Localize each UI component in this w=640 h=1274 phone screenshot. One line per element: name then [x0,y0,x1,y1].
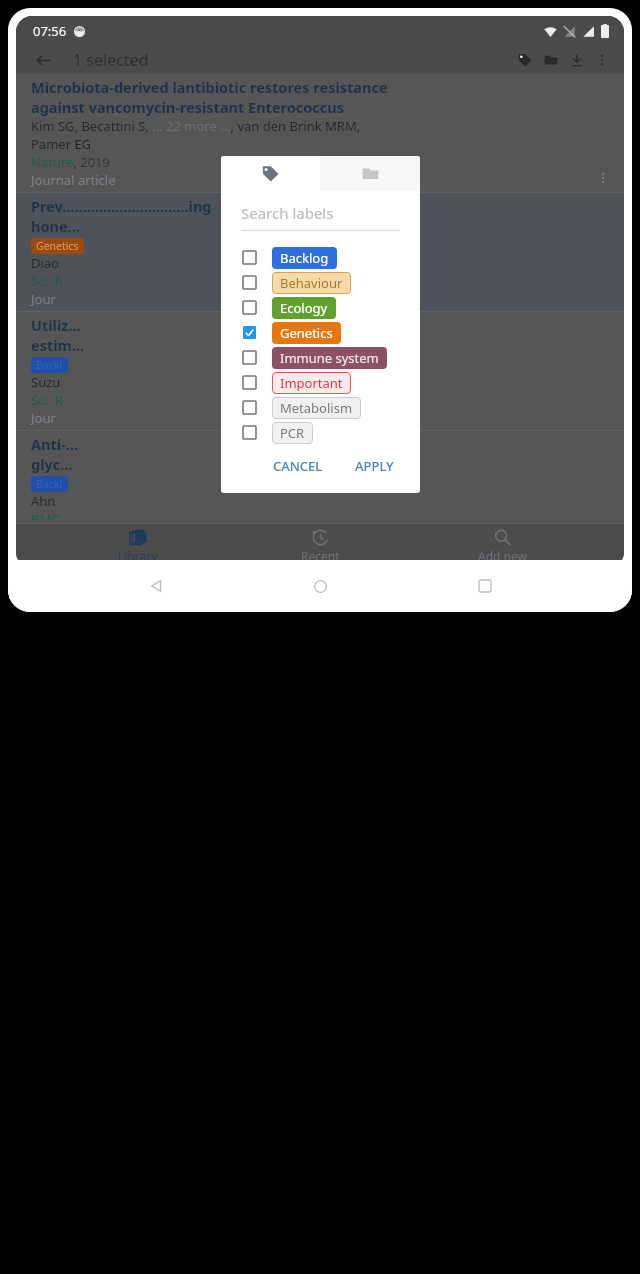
button[interactable]: Back [30,47,56,73]
button[interactable]: CANCEL [265,453,331,479]
staticText: Ecology [280,299,328,317]
staticText: Genetics [280,324,333,342]
staticText: against vancomycin-resistant Enterococcu… [31,97,345,117]
staticText: APPLY [355,457,394,475]
button[interactable]: Ecology [221,295,420,320]
button[interactable]: Add new [442,524,562,568]
staticText: hone... [31,216,80,236]
staticText: Jour [31,290,56,308]
button[interactable]: Utiliz... [16,312,624,431]
button[interactable]: APPLY [347,453,402,479]
staticText: CANCEL [273,457,323,475]
staticText: Prev...............................ing [31,196,212,216]
staticText: Microbiota-derived lantibiotic restores … [31,77,388,97]
staticText: glyc... [31,454,73,474]
staticText: Recent [301,548,340,564]
button[interactable]: Library [78,524,198,568]
button[interactable]: Anti-... [16,431,624,524]
staticText: Behaviour [280,274,343,292]
staticText: BMC [31,510,60,520]
button[interactable]: Download [564,47,590,73]
staticText: Sci. R [31,391,63,409]
button[interactable]: Folders tab [320,156,420,191]
staticText: Immune system [280,349,379,367]
button[interactable]: Labels [512,47,538,73]
staticText: Utiliz... [31,315,81,335]
staticText: 07:56 [33,22,67,40]
button[interactable]: PCR [221,420,420,445]
button[interactable]: Labels tab [221,156,320,191]
button[interactable]: Home [303,569,337,603]
staticText: Anti-... [31,434,78,454]
button[interactable]: Folders [538,47,564,73]
button[interactable]: Recents [468,569,502,603]
button[interactable]: Important [221,370,420,395]
staticText: Backl [36,358,63,372]
staticText: 1 selected [73,49,149,71]
button[interactable]: Recent [260,524,380,568]
staticText: Suzu [31,373,61,391]
button[interactable]: Backlog [221,245,420,270]
staticText: PCR [280,424,305,442]
staticText: Ahn [31,492,59,510]
staticText: Pamer EG [31,135,92,153]
button[interactable]: Metabolism [221,395,420,420]
staticText: Metabolism [280,399,353,417]
button[interactable]: Immune system [221,345,420,370]
button[interactable]: Item menu [594,169,612,187]
button[interactable]: Back [139,569,173,603]
staticText: Nature, 2019 [31,153,110,171]
button[interactable]: Microbiota-derived lantibiotic restores … [16,74,624,193]
staticText: Diao [31,254,63,272]
staticText: Journal article [31,171,116,189]
button[interactable]: More options [590,48,614,72]
button[interactable]: Behaviour [221,270,420,295]
staticText: Backl [36,477,63,491]
staticText: Library [118,548,158,564]
staticText: Sci. R [31,272,63,290]
button[interactable]: Genetics [221,320,420,345]
staticText: Genetics [36,239,79,253]
staticText: Backlog [280,249,329,267]
staticText: Search labels [241,203,334,223]
staticText: Add new [478,548,527,564]
staticText: Important [280,374,343,392]
staticText: Jour [31,409,56,427]
staticText: estim... [31,335,84,355]
staticText: Kim SG, Becattini S, ... 22 more ..., va… [31,117,361,135]
button[interactable]: Prev...............................ing [16,193,624,312]
